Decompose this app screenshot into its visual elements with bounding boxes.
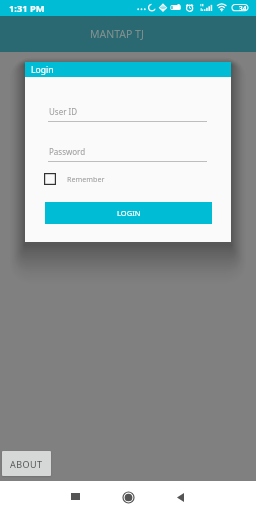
staticText: User ID: [49, 106, 78, 117]
staticText: 1:31 PM: [9, 2, 45, 15]
staticText: ABOUT: [10, 458, 43, 470]
staticText: Remember: [67, 174, 105, 184]
staticText: 34: [239, 4, 247, 13]
button[interactable]: Remember: [44, 173, 105, 185]
button[interactable]: ABOUT: [2, 451, 51, 476]
staticText: Login: [31, 64, 54, 76]
staticText: Password: [49, 146, 86, 157]
button[interactable]: Recents: [63, 485, 87, 509]
button[interactable]: Back: [168, 485, 192, 509]
staticText: LOGIN: [117, 208, 141, 218]
staticText: MANTAP TJ: [90, 27, 144, 41]
button[interactable]: Home: [116, 485, 140, 509]
button[interactable]: LOGIN: [45, 202, 212, 224]
